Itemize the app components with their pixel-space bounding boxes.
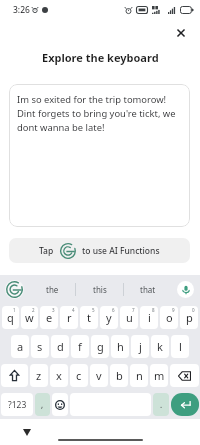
staticText: t (87, 310, 91, 325)
staticText: Tap (39, 245, 54, 257)
button[interactable]: Voice input (171, 275, 200, 303)
button[interactable]: t (80, 306, 98, 329)
staticText: f (78, 339, 82, 354)
staticText: , (41, 399, 44, 410)
staticText: o (166, 310, 173, 325)
button[interactable]: Close (172, 24, 189, 41)
button[interactable]: Enter (171, 393, 199, 416)
button[interactable]: s (31, 335, 49, 358)
staticText: 5 (92, 307, 95, 313)
button[interactable]: c (70, 364, 88, 387)
staticText: q (7, 310, 14, 325)
button[interactable]: Backspace (170, 364, 199, 387)
staticText: l (179, 339, 182, 354)
staticText: Explore the keyboard (42, 50, 159, 65)
staticText: p (186, 310, 193, 325)
staticText: u (126, 310, 133, 325)
button[interactable]: m (150, 364, 168, 387)
button[interactable]: this (76, 275, 123, 303)
staticText: v (96, 368, 102, 383)
button[interactable]: u (120, 306, 138, 329)
staticText: k (157, 339, 163, 354)
button[interactable]: v (90, 364, 108, 387)
staticText: x (56, 368, 62, 383)
button[interactable]: f (71, 335, 89, 358)
button[interactable]: , (35, 393, 50, 416)
button[interactable]: a (11, 335, 29, 358)
staticText: c (76, 368, 82, 383)
button[interactable]: q (2, 306, 19, 329)
staticText: the (46, 284, 59, 295)
staticText: to use AI Functions (82, 245, 160, 257)
button[interactable]: Emoji (52, 393, 68, 416)
staticText: 7 (132, 307, 135, 313)
staticText: z (36, 368, 42, 383)
staticText: m (154, 368, 165, 383)
staticText: 6 (112, 307, 115, 313)
button[interactable]: h (111, 335, 129, 358)
button[interactable]: z (30, 364, 48, 387)
button[interactable]: b (110, 364, 128, 387)
staticText: 1 (13, 307, 16, 313)
button[interactable]: k (151, 335, 169, 358)
staticText: b (116, 368, 123, 383)
button[interactable]: y (100, 306, 118, 329)
button[interactable]: d (51, 335, 69, 358)
staticText: . (160, 399, 163, 410)
button[interactable]: i (140, 306, 158, 329)
staticText: r (67, 310, 72, 325)
button[interactable]: Shift (1, 364, 28, 387)
staticText: this (93, 284, 107, 295)
staticText: 3 (52, 307, 55, 313)
staticText: i (148, 310, 151, 325)
button[interactable]: n (130, 364, 148, 387)
button[interactable]: that (124, 275, 171, 303)
staticText: e (46, 310, 53, 325)
button[interactable]: Tap (9, 238, 190, 263)
staticText: d (57, 339, 64, 354)
button[interactable]: Im so exited for the trip tomorow! Dint … (9, 84, 190, 227)
staticText: 9 (172, 307, 175, 313)
staticText: j (139, 339, 142, 354)
staticText: 4 (72, 307, 75, 313)
staticText: 2 (32, 307, 35, 313)
button[interactable]: g (91, 335, 109, 358)
staticText: w (25, 310, 34, 325)
staticText: that (140, 284, 156, 295)
staticText: s (37, 339, 43, 354)
staticText: g (97, 339, 104, 354)
button[interactable]: j (131, 335, 149, 358)
button[interactable]: x (50, 364, 68, 387)
button[interactable]: Grammarly assistant (0, 275, 29, 303)
staticText: 0 (192, 307, 195, 313)
button[interactable]: the (29, 275, 75, 303)
staticText: 3:26 (13, 4, 30, 16)
staticText: Im so exited for the trip tomorow! Dint … (17, 93, 176, 134)
button[interactable]: ?123 (1, 393, 33, 416)
button[interactable]: . (153, 393, 169, 416)
button[interactable]: e (40, 306, 58, 329)
button[interactable]: o (160, 306, 178, 329)
staticText: h (117, 339, 124, 354)
button[interactable]: Hide keyboard (18, 424, 35, 441)
staticText: 8 (152, 307, 155, 313)
staticText: n (136, 368, 143, 383)
staticText: ?123 (8, 399, 27, 411)
staticText: y (106, 310, 112, 325)
button[interactable]: w (21, 306, 38, 329)
button[interactable]: p (180, 306, 198, 329)
button[interactable]: r (60, 306, 78, 329)
button[interactable]: l (171, 335, 189, 358)
staticText: a (17, 339, 24, 354)
